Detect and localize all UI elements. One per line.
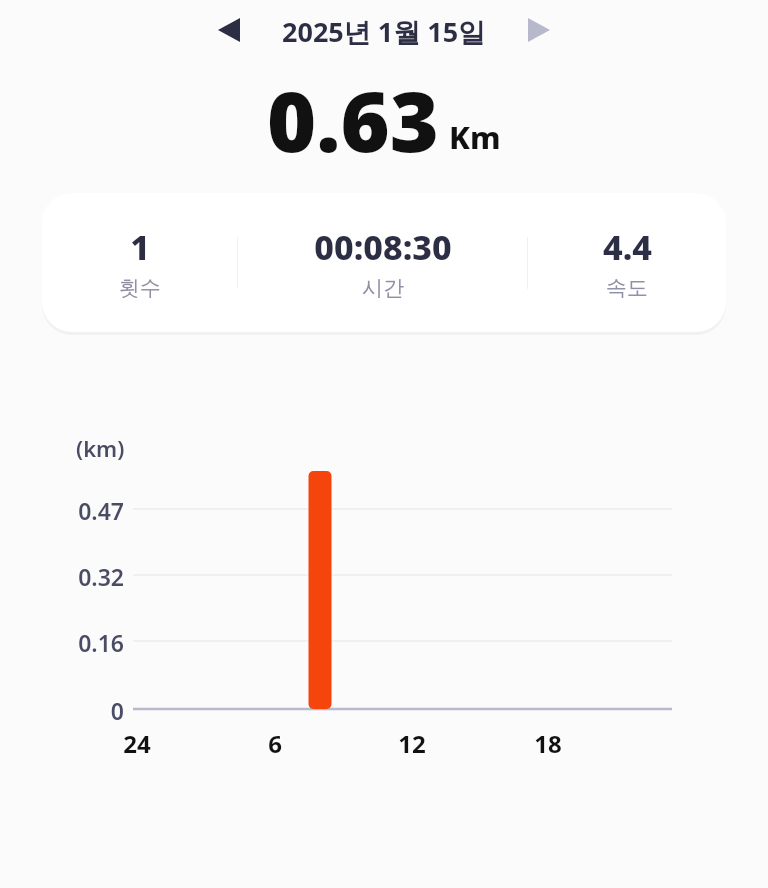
staticText: 1 [130,224,150,270]
staticText: 6 [268,727,282,760]
staticText: 속도 [606,275,648,301]
button[interactable]: 4.4 [528,216,726,309]
button[interactable]: 이전 날짜 [205,6,253,54]
button[interactable]: 1 [42,216,237,309]
staticText: 12 [398,727,426,760]
staticText: 00:08:30 [314,224,452,270]
button[interactable]: 00:08:30 [238,216,527,309]
staticText: 2025년 1월 15일 [282,13,486,50]
staticText: 18 [534,727,562,760]
button[interactable]: 다음 날짜 [515,6,563,54]
staticText: 0.47 [78,495,124,526]
staticText: 0.16 [78,627,124,658]
staticText: 24 [123,727,151,760]
staticText: 횟수 [119,275,161,301]
staticText: 시간 [362,275,404,301]
staticText: 0.32 [78,561,124,592]
staticText: 0.63 [267,62,439,172]
staticText: 0 [110,695,124,726]
staticText: Km [449,116,501,158]
staticText: 4.4 [603,224,652,270]
staticText: (km) [76,433,125,463]
